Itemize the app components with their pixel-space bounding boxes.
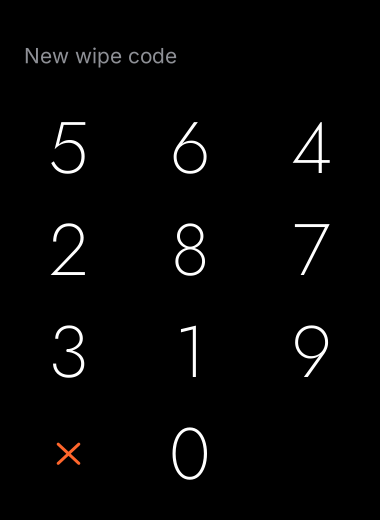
- staticText: 5: [48, 95, 89, 200]
- staticText: 1: [174, 299, 205, 404]
- staticText: 9: [291, 299, 331, 404]
- staticText: 8: [171, 197, 209, 302]
- staticText: New wipe code: [24, 43, 177, 68]
- button[interactable]: 6: [129, 97, 251, 199]
- button[interactable]: Clear: [8, 403, 129, 505]
- button[interactable]: 3: [8, 301, 129, 403]
- button[interactable]: 1: [129, 301, 251, 403]
- button[interactable]: 9: [251, 301, 372, 403]
- staticText: 2: [49, 197, 88, 302]
- button[interactable]: 5: [8, 97, 129, 199]
- staticText: 3: [48, 299, 88, 404]
- staticText: 4: [291, 95, 332, 200]
- button[interactable]: 2: [8, 199, 129, 301]
- button[interactable]: 8: [129, 199, 251, 301]
- button[interactable]: 7: [251, 199, 372, 301]
- button[interactable]: 4: [251, 97, 372, 199]
- staticText: 0: [169, 401, 211, 506]
- button[interactable]: 0: [129, 403, 251, 505]
- staticText: 6: [170, 95, 210, 200]
- staticText: 7: [292, 197, 330, 302]
